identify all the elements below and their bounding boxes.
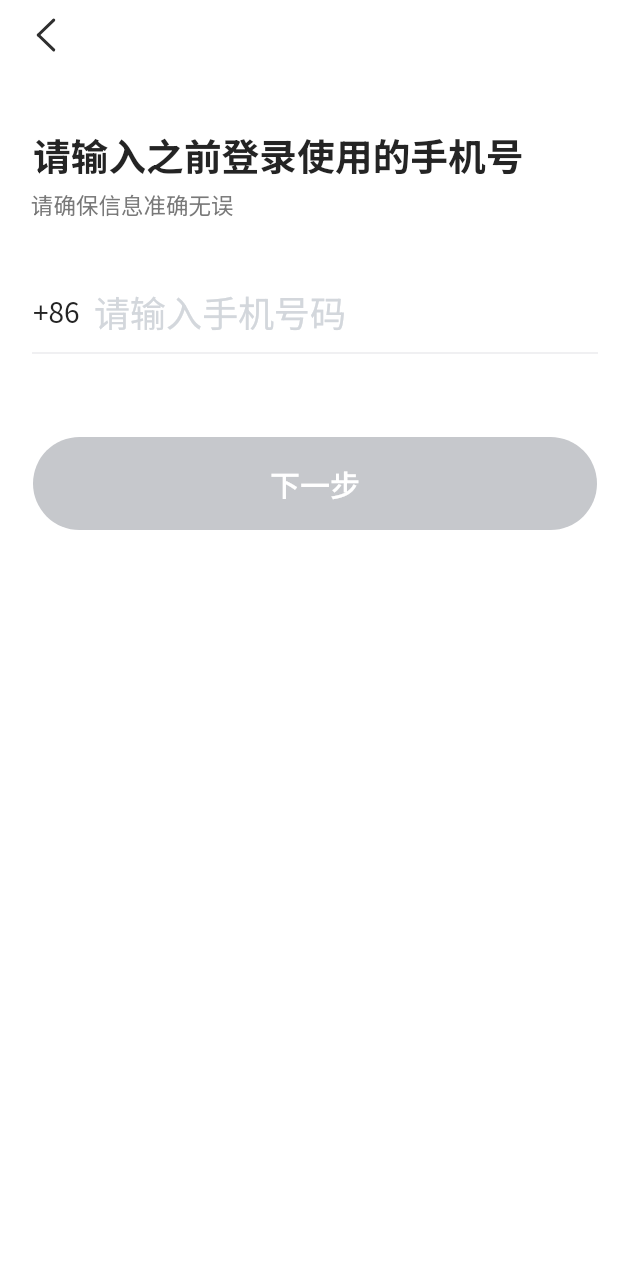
staticText: 请输入之前登录使用的手机号 bbox=[33, 127, 524, 181]
button[interactable]: +86 bbox=[33, 285, 597, 337]
button[interactable]: Back bbox=[12, 1, 80, 69]
staticText: 请确保信息准确无误 bbox=[31, 188, 234, 221]
staticText: 请输入手机号码 bbox=[94, 285, 347, 337]
staticText: 下一步 bbox=[270, 462, 360, 505]
staticText: +86 bbox=[33, 291, 80, 332]
button[interactable]: 下一步 bbox=[33, 437, 597, 530]
